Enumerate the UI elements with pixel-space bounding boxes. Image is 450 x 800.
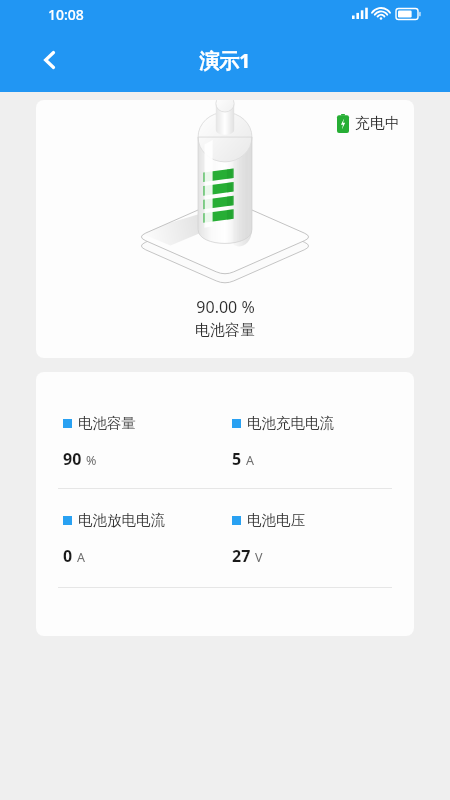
staticText: 27 [232, 545, 251, 567]
button[interactable]: Back [30, 40, 70, 80]
staticText: 90.00 % [196, 296, 255, 318]
staticText: 5 [232, 448, 242, 470]
button[interactable]: 电池容量 [63, 414, 225, 470]
button[interactable]: 电池充电电流 [232, 414, 414, 470]
staticText: 电池容量 [195, 321, 255, 340]
staticText: 电池电压 [247, 511, 305, 529]
button[interactable]: 电池电压 [232, 511, 414, 567]
button[interactable]: 充电中 [36, 100, 414, 358]
staticText: % [86, 452, 97, 469]
staticText: 充电中 [355, 114, 400, 133]
staticText: 10:08 [48, 5, 84, 24]
staticText: 电池放电电流 [78, 511, 165, 529]
staticText: 电池容量 [78, 414, 136, 432]
staticText: V [255, 549, 263, 566]
staticText: 90 [63, 448, 82, 470]
staticText: 0 [63, 545, 73, 567]
staticText: A [246, 452, 254, 469]
button[interactable]: 电池放电电流 [63, 511, 225, 567]
staticText: 电池充电电流 [247, 414, 334, 432]
staticText: 演示1 [199, 47, 251, 74]
staticText: A [77, 549, 85, 566]
